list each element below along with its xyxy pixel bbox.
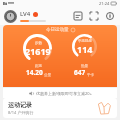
button[interactable]: 优惠券上新!领取即​可享立减20+ <box>3 88 117 98</box>
staticText: 优惠券上新!领取即​可享立减20+ <box>36 91 92 96</box>
staticText: 运动记录 <box>8 101 32 109</box>
staticText: 114 <box>77 43 93 55</box>
staticText: 14.20 <box>26 68 43 77</box>
staticText: 步数 <box>35 41 42 45</box>
staticText: 21:24 <box>99 1 110 6</box>
button[interactable]: 今日运动量 <box>3 25 117 87</box>
staticText: 距离 <box>35 64 42 68</box>
button[interactable]: LV4 <box>20 10 46 22</box>
staticText: 647 <box>74 68 86 77</box>
staticText: 千卡 <box>87 73 94 77</box>
button[interactable]: Info <box>104 10 116 22</box>
button[interactable]: 运动记录 <box>3 98 117 118</box>
staticText: 热量 <box>81 64 88 68</box>
staticText: 8/14 户外骑行 <box>8 110 34 115</box>
staticText: LV4 <box>20 10 31 18</box>
staticText: 今日运动量 <box>46 27 69 33</box>
staticText: 中高强度 <box>78 39 92 43</box>
button[interactable]: Scan <box>88 10 100 22</box>
staticText: 公里 <box>44 73 51 77</box>
button[interactable]: Membership card <box>72 10 84 22</box>
staticText: 21619 <box>25 45 51 57</box>
button[interactable]: Device <box>4 10 17 23</box>
